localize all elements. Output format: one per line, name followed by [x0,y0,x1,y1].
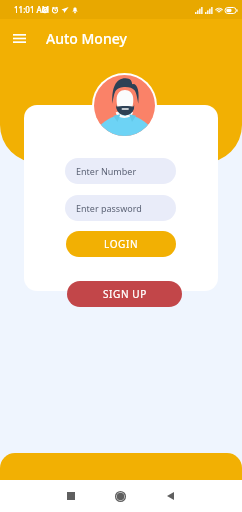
button[interactable]: Enter password [65,195,176,221]
button[interactable]: Enter Number [65,158,176,184]
button[interactable]: Back [154,480,186,512]
staticText: Enter Number [76,165,137,177]
staticText: SIGN UP [103,287,147,301]
button[interactable]: LOGIN [66,231,176,257]
button[interactable]: Recents [55,480,87,512]
button[interactable]: Home [104,480,136,512]
button[interactable]: SIGN UP [67,281,182,307]
staticText: 11:01 AM [14,4,50,15]
staticText: Auto Money [46,29,127,48]
staticText: LOGIN [104,237,139,251]
button[interactable]: Menu [6,25,32,51]
staticText: Enter password [76,202,142,214]
